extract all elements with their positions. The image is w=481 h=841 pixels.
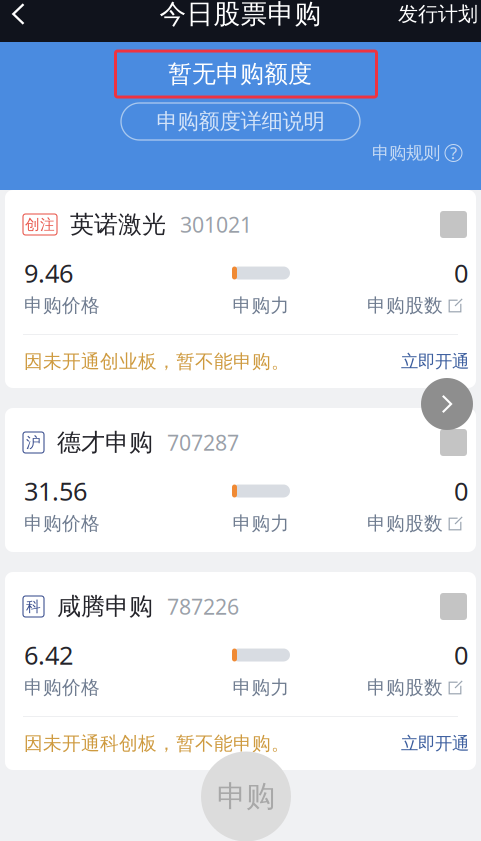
staticText: 立即开通 [401, 733, 469, 754]
staticText: 德才申购 [57, 428, 153, 457]
staticText: 0 [454, 474, 468, 508]
button[interactable]: 申购规则 [372, 141, 481, 165]
staticText: 申购价格 [24, 294, 100, 317]
staticText: 暂无申购额度 [168, 59, 312, 89]
staticText: 31.56 [24, 474, 87, 508]
staticText: 因未开通科创板，暂不能申购。 [24, 732, 290, 755]
staticText: 申购力 [232, 676, 289, 699]
staticText: 申购力 [232, 512, 289, 535]
button[interactable]: 下一只 [421, 378, 473, 430]
staticText: 发行计划 [398, 2, 478, 26]
staticText: 申购股数 [367, 294, 443, 317]
staticText: 申购力 [232, 294, 289, 317]
staticText: 申购价格 [24, 512, 100, 535]
staticText: 申购股数 [367, 676, 443, 699]
button[interactable]: 选择 [440, 429, 467, 456]
staticText: 立即开通 [401, 351, 469, 372]
button[interactable]: 返回 [0, 0, 52, 28]
staticText: 707287 [167, 428, 239, 457]
button[interactable]: 选择 [440, 211, 467, 238]
staticText: 英诺激光 [70, 210, 166, 239]
staticText: 沪 [26, 433, 41, 451]
staticText: 申购规则 [372, 142, 440, 164]
button[interactable]: 申购额度详细说明 [121, 103, 360, 140]
staticText: 0 [454, 638, 468, 672]
button[interactable]: 选择 [440, 593, 467, 620]
staticText: 申购价格 [24, 676, 100, 699]
button[interactable]: 申购 [201, 751, 291, 841]
staticText: 创注 [25, 215, 55, 233]
staticText: 科 [26, 597, 41, 615]
staticText: 申购 [217, 778, 275, 814]
staticText: 今日股票申购 [159, 0, 321, 30]
button[interactable]: 发行计划 [384, 0, 481, 28]
staticText: 9.46 [24, 256, 73, 290]
staticText: 6.42 [24, 638, 73, 672]
staticText: 咸腾申购 [57, 592, 153, 621]
staticText: 因未开通创业板，暂不能申购。 [24, 350, 290, 373]
staticText: 301021 [180, 210, 252, 239]
staticText: 787226 [167, 592, 239, 621]
button[interactable]: 立即开通 [401, 351, 469, 372]
staticText: ? [450, 142, 457, 164]
staticText: 申购股数 [367, 512, 443, 535]
staticText: 0 [454, 256, 468, 290]
button[interactable]: 立即开通 [401, 733, 469, 754]
staticText: 申购额度详细说明 [156, 108, 324, 135]
